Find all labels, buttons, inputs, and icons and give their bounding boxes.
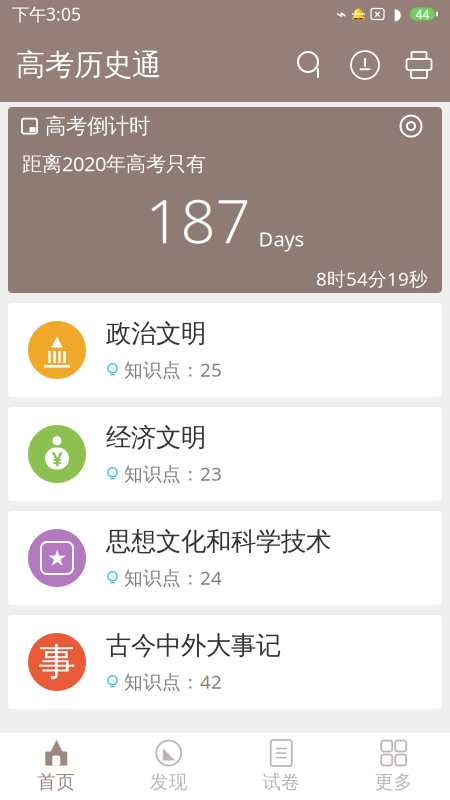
staticText: ◗ [393,5,401,23]
button[interactable]: 试卷 [225,733,337,800]
staticText: Days [258,225,304,252]
button[interactable]: ▲ [0,733,112,800]
staticText: 知识点：24 [124,565,222,590]
staticText: 首页 [37,770,75,793]
staticText: 知识点：42 [124,669,222,694]
staticText: 44 [415,6,429,22]
button[interactable]: 设置 [394,109,428,143]
staticText: 古今中外大事记 [106,630,281,661]
button[interactable]: ★ [0,501,450,605]
staticText: 发现 [150,770,188,793]
staticText: 知识点：25 [124,357,222,382]
button[interactable]: ◣ [112,733,225,800]
staticText: ⌁ [336,4,346,24]
staticText: ¥ [51,445,62,472]
staticText: 事 [38,639,75,685]
staticText: 经济文明 [106,422,206,453]
button[interactable]: ▲ [0,293,450,397]
staticText: 距离2020年高考只有 [22,150,206,177]
button[interactable]: ¥ [0,397,450,501]
staticText: 知识点：23 [124,461,222,486]
staticText: ★ [47,545,67,571]
button[interactable]: 搜索 [284,40,338,90]
button[interactable]: 更多 [337,733,450,800]
staticText: 更多 [375,770,413,793]
staticText: 试卷 [262,770,300,793]
staticText: 187 [145,179,250,260]
staticText: 高考倒计时 [45,113,150,139]
staticText: 政治文明 [106,318,206,349]
staticText: 下午3:05 [12,2,81,25]
staticText: 8时54分19秒 [316,266,428,291]
staticText: 思想文化和科学技术 [106,526,331,557]
staticText: 🔔 [351,7,366,21]
staticText: ▲ [51,332,62,349]
staticText: × [374,6,381,22]
staticText: ▲ [48,734,64,758]
button[interactable]: 事 [0,605,450,709]
button[interactable]: 打印 [392,40,446,90]
staticText: 高考历史通 [16,47,161,83]
button[interactable]: 下载 [338,40,392,90]
staticText: ◣ [163,744,175,762]
